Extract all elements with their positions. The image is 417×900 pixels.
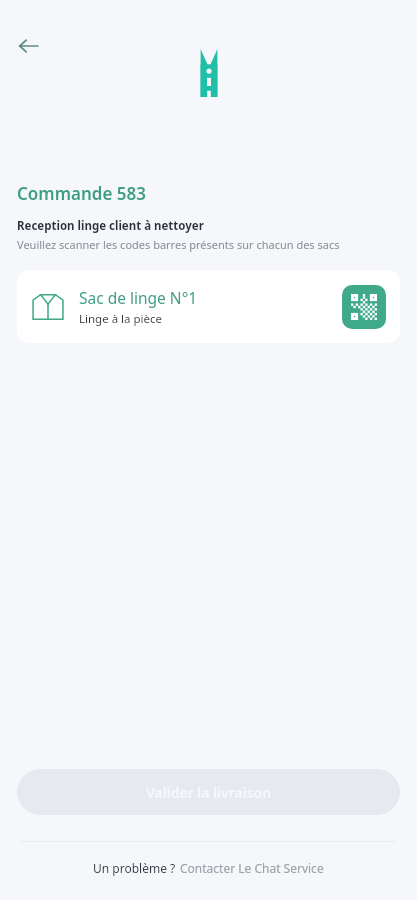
staticText: Reception linge client à nettoyer xyxy=(17,218,204,234)
staticText: Linge à la pièce xyxy=(79,311,163,327)
staticText: Veuillez scanner les codes barres présen… xyxy=(17,237,340,252)
staticText: Un problème ? xyxy=(93,860,176,876)
staticText: Contacter Le Chat Service xyxy=(180,860,324,876)
button[interactable]: Back xyxy=(8,26,48,66)
button[interactable]: Contacter Le Chat Service xyxy=(180,860,324,876)
staticText: Valider la livraison xyxy=(146,783,272,802)
button[interactable]: Scanner le QR code xyxy=(342,285,386,329)
staticText: Sac de linge N°1 xyxy=(79,287,198,308)
button[interactable]: Valider la livraison xyxy=(17,769,400,815)
staticText: Commande 583 xyxy=(17,182,146,205)
button[interactable]: Sac de linge N°1 xyxy=(17,270,400,343)
